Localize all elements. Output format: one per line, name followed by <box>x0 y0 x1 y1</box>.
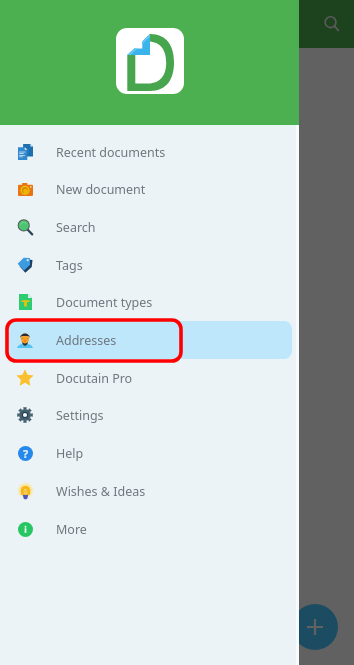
button[interactable]: Tags <box>9 246 292 284</box>
staticText: Docutain Pro <box>56 370 133 387</box>
staticText: Search <box>56 219 96 236</box>
staticText: Wishes & Ideas <box>56 483 146 500</box>
staticText: Document types <box>56 294 153 311</box>
button[interactable]: Settings <box>9 396 292 434</box>
button[interactable]: Addresses <box>9 321 292 359</box>
button[interactable]: Document types <box>9 283 292 321</box>
button[interactable]: More <box>9 510 292 548</box>
staticText: More <box>56 521 87 538</box>
button[interactable]: Search <box>9 208 292 246</box>
button[interactable]: ? <box>9 434 292 472</box>
button[interactable]: Recent documents <box>9 133 292 171</box>
staticText: Settings <box>56 407 104 424</box>
staticText: Help <box>56 445 84 462</box>
staticText: Recent documents <box>56 144 166 161</box>
button[interactable]: Search <box>316 8 348 40</box>
staticText: New document <box>56 181 146 198</box>
staticText: ? <box>23 446 29 461</box>
button[interactable]: Docutain Pro <box>9 359 292 397</box>
staticText: Tags <box>56 257 83 274</box>
staticText: Addresses <box>56 332 117 349</box>
button[interactable]: Add <box>292 604 338 650</box>
button[interactable]: New document <box>9 170 292 208</box>
button[interactable]: Wishes & Ideas <box>9 472 292 510</box>
